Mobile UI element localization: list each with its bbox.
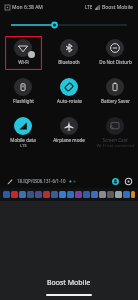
button[interactable]: App <box>35 191 42 198</box>
staticText: Airplane mode <box>53 137 85 143</box>
button[interactable]: Flashlight <box>1 76 45 104</box>
staticText: Auto-rotate <box>57 98 82 104</box>
button[interactable]: App <box>27 191 34 198</box>
staticText: Screen Cast <box>102 137 128 143</box>
button[interactable]: Auto-rotate <box>47 76 91 104</box>
button[interactable]: Airplane mode <box>47 115 91 143</box>
button[interactable]: User <box>110 176 120 186</box>
staticText: Mon 6:38 AM <box>12 4 43 11</box>
button[interactable]: App <box>91 191 98 198</box>
button[interactable]: App <box>19 191 26 198</box>
staticText: 18.IQP/0S06.131-6/1-10 <box>17 178 66 184</box>
button[interactable]: App <box>83 191 90 198</box>
button[interactable]: App <box>43 191 50 198</box>
button[interactable]: Mobile data <box>1 115 45 149</box>
staticText: Bluetooth <box>58 59 80 65</box>
button[interactable]: Screen Cast <box>93 115 137 149</box>
button[interactable]: App <box>67 191 74 198</box>
button[interactable]: App <box>99 191 106 198</box>
button[interactable]: Edit tiles <box>5 177 14 186</box>
staticText: Do Not Disturb <box>99 59 132 65</box>
staticText: Battery Saver <box>101 98 130 104</box>
button[interactable]: App <box>59 191 66 198</box>
staticText: Flashlight <box>13 98 34 104</box>
button[interactable]: App <box>75 191 82 198</box>
button[interactable]: App <box>115 191 122 198</box>
button[interactable]: Settings <box>123 176 133 186</box>
staticText: LTE <box>20 143 27 149</box>
button[interactable]: App <box>51 191 58 198</box>
staticText: Mobile data <box>10 137 36 143</box>
button[interactable]: Do Not Disturb <box>93 37 137 65</box>
staticText: Boost Mobile <box>102 4 133 11</box>
staticText: Wi-Fi <box>18 59 29 65</box>
button[interactable]: Battery Saver <box>93 76 137 104</box>
button[interactable]: App <box>11 191 18 198</box>
staticText: LTE <box>85 4 93 10</box>
staticText: Wi-Fi not connected <box>96 143 135 149</box>
button[interactable]: Bluetooth <box>47 37 91 65</box>
button[interactable]: Wi-Fi <box>1 37 45 65</box>
button[interactable]: App <box>131 191 135 198</box>
button[interactable]: App <box>123 191 130 198</box>
staticText: Boost Mobile <box>47 278 91 288</box>
button[interactable]: App <box>107 191 114 198</box>
button[interactable]: App <box>3 191 10 198</box>
